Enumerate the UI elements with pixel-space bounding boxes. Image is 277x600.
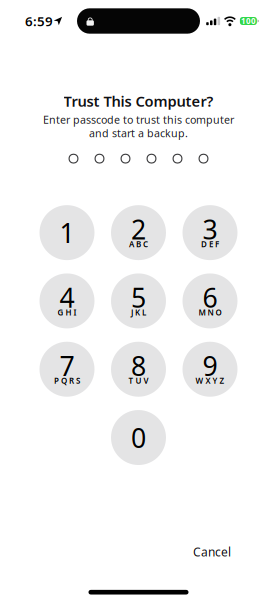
staticText: 6: [202, 280, 217, 315]
staticText: W X Y Z: [195, 375, 224, 386]
staticText: P Q R S: [54, 375, 80, 386]
staticText: 2: [131, 211, 146, 247]
staticText: 6:59: [25, 12, 53, 30]
staticText: 5: [131, 280, 146, 315]
staticText: and start a backup.: [89, 126, 188, 140]
staticText: D E F: [201, 239, 219, 249]
staticText: J K L: [131, 307, 146, 318]
button[interactable]: 2: [111, 205, 166, 260]
button[interactable]: 1: [39, 205, 94, 260]
staticText: 7: [59, 348, 74, 383]
staticText: 8: [131, 348, 146, 383]
button[interactable]: 3: [182, 205, 237, 260]
staticText: M N O: [198, 307, 221, 318]
staticText: 1: [59, 215, 74, 250]
staticText: Cancel: [193, 544, 231, 560]
staticText: 9: [202, 348, 217, 383]
staticText: 0: [131, 420, 146, 455]
button[interactable]: 6: [182, 273, 237, 328]
button[interactable]: 0: [111, 410, 166, 465]
button[interactable]: 8: [111, 342, 166, 397]
staticText: 100: [241, 16, 256, 26]
button[interactable]: 9: [182, 342, 237, 397]
button[interactable]: 5: [111, 273, 166, 328]
button[interactable]: Cancel: [185, 537, 239, 567]
staticText: Trust This Computer?: [63, 91, 213, 111]
staticText: 3: [202, 211, 217, 247]
staticText: G H I: [57, 307, 76, 318]
staticText: A B C: [129, 239, 148, 249]
staticText: Enter passcode to trust this computer: [43, 113, 234, 127]
button[interactable]: 7: [39, 342, 94, 397]
button[interactable]: 4: [39, 273, 94, 328]
staticText: T U V: [128, 375, 148, 386]
staticText: 4: [59, 280, 74, 315]
